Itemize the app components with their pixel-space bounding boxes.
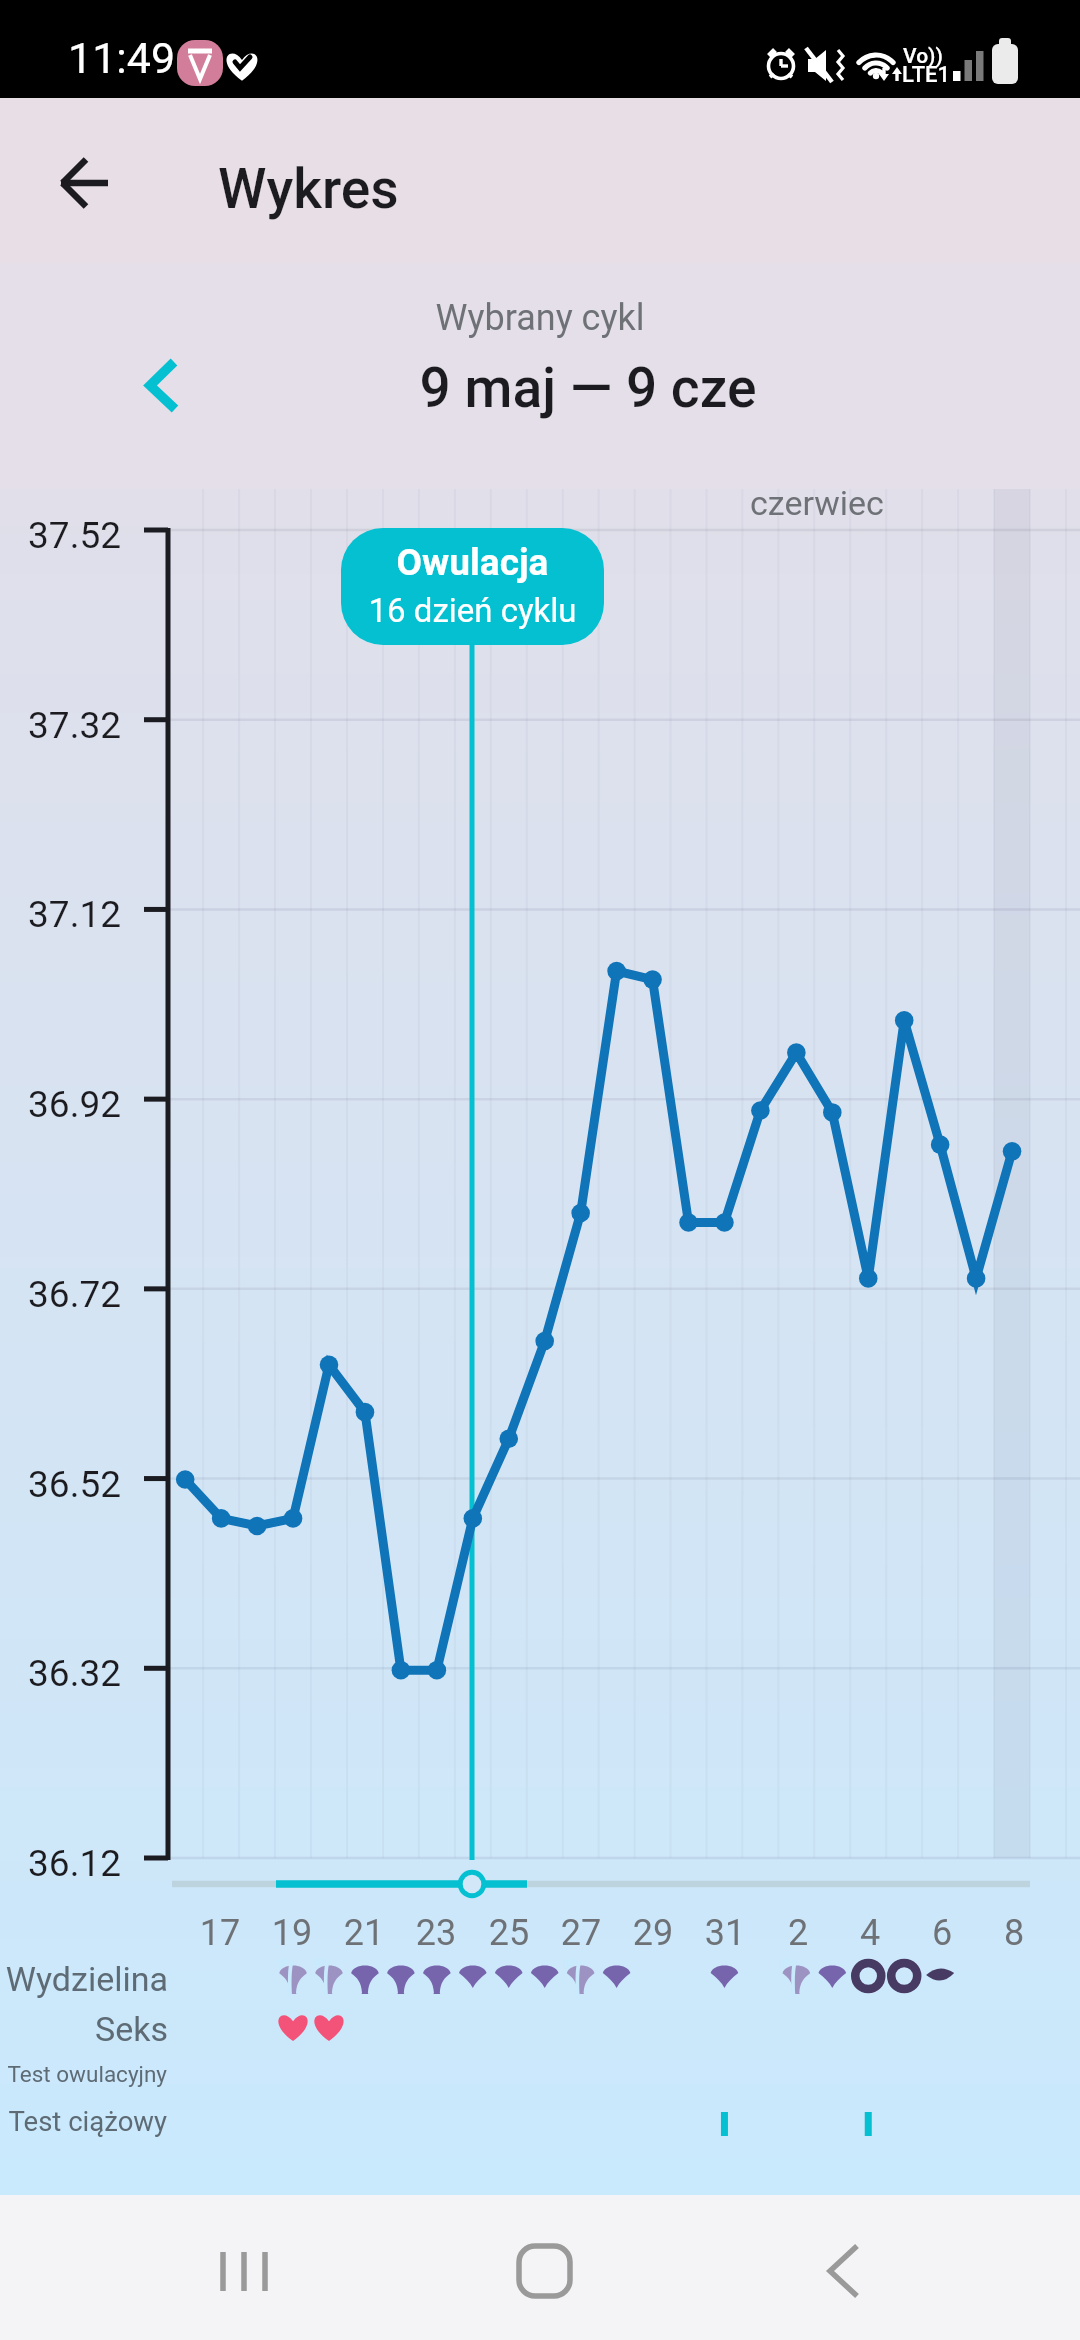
button[interactable]: Back — [30, 124, 140, 234]
staticText: 36.72 — [0, 1273, 121, 1327]
staticText: 8 — [969, 1912, 1059, 1964]
staticText: Wykres — [218, 157, 638, 237]
staticText: 16 dzień cyklu — [333, 591, 612, 639]
staticText: 37.12 — [0, 893, 121, 947]
staticText: Wybrany cykl — [0, 297, 1080, 349]
staticText: Test ciążowy — [0, 2105, 167, 2145]
staticText: 9 maj — 9 cze — [176, 356, 1000, 436]
staticText: 37.32 — [0, 704, 121, 758]
staticText: Wydzielina — [0, 1959, 168, 2008]
staticText: czerwiec — [750, 483, 1050, 532]
staticText: 11:49 — [68, 33, 268, 95]
staticText: 2 — [753, 1912, 843, 1964]
staticText: 27 — [536, 1912, 626, 1964]
button[interactable]: Cycle day slider — [160, 1840, 1040, 1920]
staticText: 4 — [825, 1912, 915, 1964]
staticText: 31 — [680, 1912, 770, 1964]
staticText: 29 — [608, 1912, 698, 1964]
staticText: 37.52 — [0, 514, 121, 568]
staticText: 6 — [897, 1912, 987, 1964]
button[interactable]: Previous cycle — [120, 330, 230, 440]
staticText: 36.12 — [0, 1842, 121, 1896]
staticText: 25 — [464, 1912, 554, 1964]
staticText: Seks — [0, 2009, 168, 2058]
staticText: 23 — [391, 1912, 481, 1964]
staticText: 19 — [247, 1912, 337, 1964]
button[interactable]: Back — [755, 2226, 935, 2316]
staticText: 36.92 — [0, 1083, 121, 1137]
button[interactable]: Home — [452, 2226, 632, 2316]
staticText: Owulacja — [341, 541, 604, 595]
staticText: Vo)) — [903, 44, 963, 74]
staticText: LTE1 — [902, 62, 962, 94]
button[interactable]: Recents — [150, 2226, 330, 2316]
staticText: Test owulacyjny — [0, 2061, 167, 2094]
staticText: 36.32 — [0, 1652, 121, 1706]
staticText: 17 — [175, 1912, 265, 1964]
staticText: 36.52 — [0, 1463, 121, 1517]
staticText: 21 — [319, 1912, 409, 1964]
